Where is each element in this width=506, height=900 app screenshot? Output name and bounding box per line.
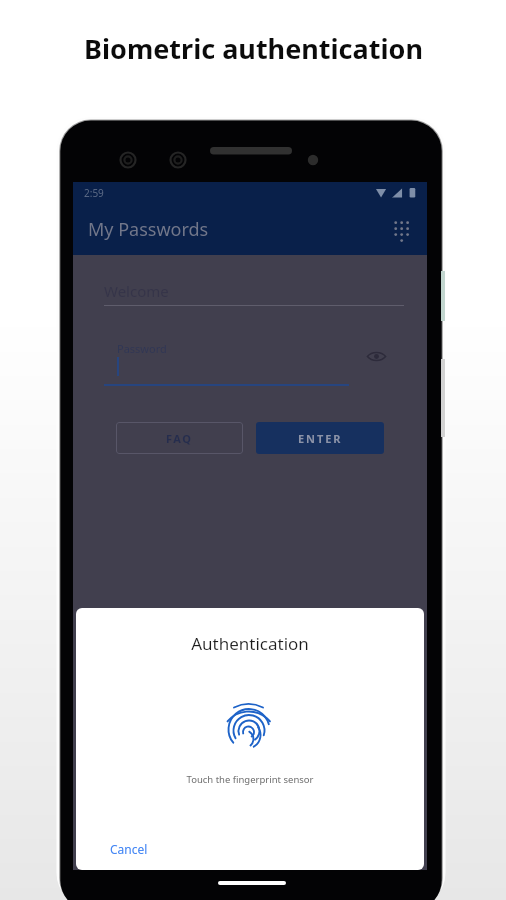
staticText: Touch the fingerprint sensor <box>76 773 424 786</box>
button[interactable]: Cancel <box>100 835 158 863</box>
button[interactable]: Show password <box>361 341 391 371</box>
staticText: FAQ <box>166 431 193 446</box>
staticText: Welcome <box>104 281 169 301</box>
staticText: Authentication <box>76 632 424 655</box>
staticText: Biometric authentication <box>84 30 423 67</box>
staticText: Password <box>117 341 167 356</box>
button[interactable]: Dialpad <box>383 211 419 247</box>
staticText: My Passwords <box>88 217 209 242</box>
staticText: 2:59 <box>84 186 104 200</box>
staticText: Cancel <box>110 841 148 857</box>
staticText: ENTER <box>298 431 343 446</box>
button[interactable]: FAQ <box>116 422 243 454</box>
button[interactable]: ENTER <box>256 422 384 454</box>
